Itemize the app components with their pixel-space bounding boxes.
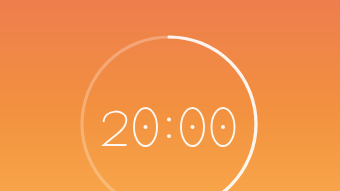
other: Countdown timer, 20 minutes remaining	[0, 0, 340, 191]
button[interactable]: Pause timer	[0, 0, 340, 191]
